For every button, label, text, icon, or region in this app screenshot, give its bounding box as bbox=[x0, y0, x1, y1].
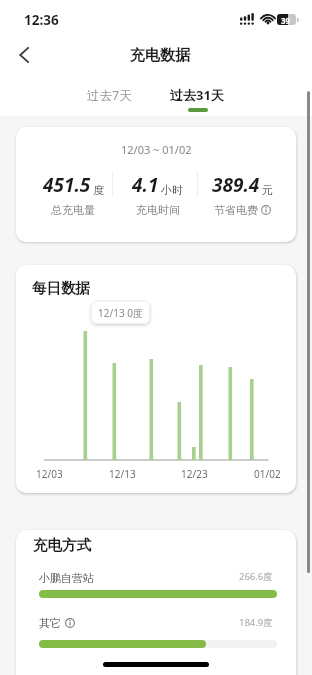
staticText: 12/03 ~ 01/02 bbox=[121, 142, 192, 157]
staticText: 小鹏自营站 bbox=[39, 571, 94, 585]
staticText: 451.5 bbox=[43, 172, 91, 198]
button[interactable]: 过去7天 bbox=[71, 81, 147, 109]
staticText: 过去31天 bbox=[170, 86, 224, 104]
staticText: 39 bbox=[281, 15, 291, 26]
staticText: 元 bbox=[262, 183, 273, 197]
staticText: 12/13 bbox=[109, 467, 136, 481]
staticText: 12:36 bbox=[24, 11, 59, 29]
staticText: 12/23 bbox=[181, 467, 208, 481]
staticText: 12/13 0度 bbox=[98, 306, 143, 320]
button[interactable] bbox=[10, 41, 38, 69]
staticText: 小时 bbox=[161, 183, 183, 197]
staticText: 充电方式 bbox=[33, 536, 91, 554]
staticText: 节省电费 bbox=[214, 203, 258, 217]
staticText: 184.9度 bbox=[239, 616, 273, 629]
staticText: 充电数据 bbox=[130, 46, 190, 65]
staticText: 4.1 bbox=[132, 172, 159, 198]
staticText: 其它 bbox=[39, 616, 61, 630]
staticText: 充电时间 bbox=[136, 203, 180, 217]
staticText: 389.4 bbox=[212, 172, 260, 198]
button[interactable]: 过去31天 bbox=[159, 81, 235, 109]
staticText: 01/02 bbox=[254, 467, 281, 481]
staticText: 总充电量 bbox=[51, 203, 95, 217]
staticText: 度 bbox=[93, 183, 104, 197]
staticText: 每日数据 bbox=[32, 279, 90, 297]
staticText: 266.6度 bbox=[239, 570, 273, 583]
staticText: 过去7天 bbox=[87, 87, 132, 104]
staticText: 12/03 bbox=[36, 467, 63, 481]
